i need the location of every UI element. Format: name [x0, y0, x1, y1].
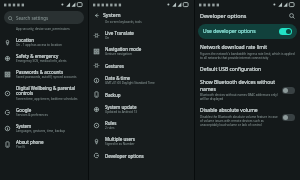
- staticText: Screen time, app timers, bedtime schedul…: [16, 97, 78, 101]
- button[interactable]: Passwords & accounts: [0, 66, 88, 82]
- staticText: Signed in as Number: [105, 142, 135, 146]
- button[interactable]: System update: [89, 101, 194, 117]
- staticText: Developer options: [200, 12, 287, 19]
- button[interactable]: Date & time: [89, 72, 194, 88]
- button[interactable]: About phone: [0, 136, 88, 152]
- staticText: Use developer options: [203, 28, 279, 35]
- staticText: Navigation mode: [105, 46, 142, 52]
- staticText: Disable absolute volume: [200, 107, 258, 114]
- staticText: Default USB configuration: [200, 66, 262, 73]
- staticText: Figures the network's bandwidth ingress …: [200, 52, 295, 60]
- button[interactable]: Navigation mode: [89, 43, 194, 59]
- button[interactable]: Location: [0, 34, 88, 50]
- button[interactable]: System: [0, 120, 88, 136]
- button[interactable]: Switch on: [279, 28, 292, 35]
- staticText: Date & time: [105, 75, 131, 81]
- button[interactable]: Google: [0, 104, 88, 120]
- staticText: Rules: [105, 120, 117, 126]
- staticText: System: [103, 11, 121, 18]
- staticText: On - 1 app has access to location: [16, 43, 62, 47]
- button[interactable]: Back: [89, 9, 194, 20]
- staticText: Show Bluetooth devices without names: [200, 79, 278, 92]
- staticText: System: [16, 123, 32, 129]
- button[interactable]: Back: [92, 11, 100, 19]
- staticText: Emergency SOS, medical info, alerts: [16, 59, 67, 63]
- button[interactable]: Developer options: [89, 149, 194, 162]
- staticText: Digital Wellbeing & parental controls: [16, 85, 76, 97]
- button[interactable]: Multiple users: [89, 133, 194, 149]
- staticText: On screen keyboards, tools: [105, 20, 142, 24]
- staticText: Updated to Android 13: [105, 110, 138, 114]
- button[interactable]: Backup: [89, 88, 194, 101]
- button[interactable]: Live Translate: [89, 27, 194, 43]
- staticText: Bluetooth devices without names (MAC add…: [200, 93, 278, 101]
- staticText: Location: [16, 37, 35, 43]
- staticText: Services & preferences: [16, 113, 48, 117]
- staticText: Backup: [105, 92, 121, 98]
- button[interactable]: Show Bluetooth devices without names: [195, 77, 300, 103]
- staticText: System update: [105, 104, 137, 110]
- button[interactable]: Safety & emergency: [0, 50, 88, 66]
- button[interactable]: Rules: [89, 117, 194, 133]
- staticText: Google: [16, 107, 32, 113]
- button[interactable]: Network download rate limit: [195, 42, 300, 62]
- button[interactable]: Search: [287, 11, 296, 20]
- button[interactable]: Gestures: [89, 59, 194, 72]
- staticText: Saved passwords, autofill, synced accoun…: [16, 75, 77, 79]
- staticText: App security, device scan, permissions: [16, 27, 70, 31]
- staticText: Live Translate: [105, 30, 134, 36]
- staticText: Passwords & accounts: [16, 69, 64, 75]
- staticText: Languages, gestures, time, backup: [16, 129, 66, 133]
- button[interactable]: Search settings: [4, 11, 84, 24]
- staticText: Safety & emergency: [16, 53, 59, 59]
- staticText: Pixel 6: [16, 145, 26, 149]
- button[interactable]: Use developer options: [198, 24, 297, 39]
- button[interactable]: Default USB configuration: [195, 64, 300, 75]
- button[interactable]: Switch off: [282, 87, 295, 94]
- staticText: 2 rules: [105, 126, 115, 130]
- staticText: On: [105, 36, 110, 40]
- staticText: Search settings: [16, 15, 49, 21]
- staticText: Gesture navigation: [105, 52, 132, 56]
- staticText: About phone: [16, 139, 44, 145]
- staticText: GMT+01:00 Daylight Standard Time: [105, 81, 155, 85]
- staticText: Network download rate limit: [200, 44, 267, 51]
- staticText: Multiple users: [105, 136, 135, 142]
- button[interactable]: Switch off: [282, 114, 295, 121]
- button[interactable]: Disable absolute volume: [195, 105, 300, 129]
- button[interactable]: Digital Wellbeing & parental controls: [0, 82, 88, 104]
- staticText: Disables the Bluetooth absolute volume f…: [200, 115, 278, 127]
- staticText: Gestures: [105, 63, 124, 69]
- staticText: Developer options: [105, 153, 144, 159]
